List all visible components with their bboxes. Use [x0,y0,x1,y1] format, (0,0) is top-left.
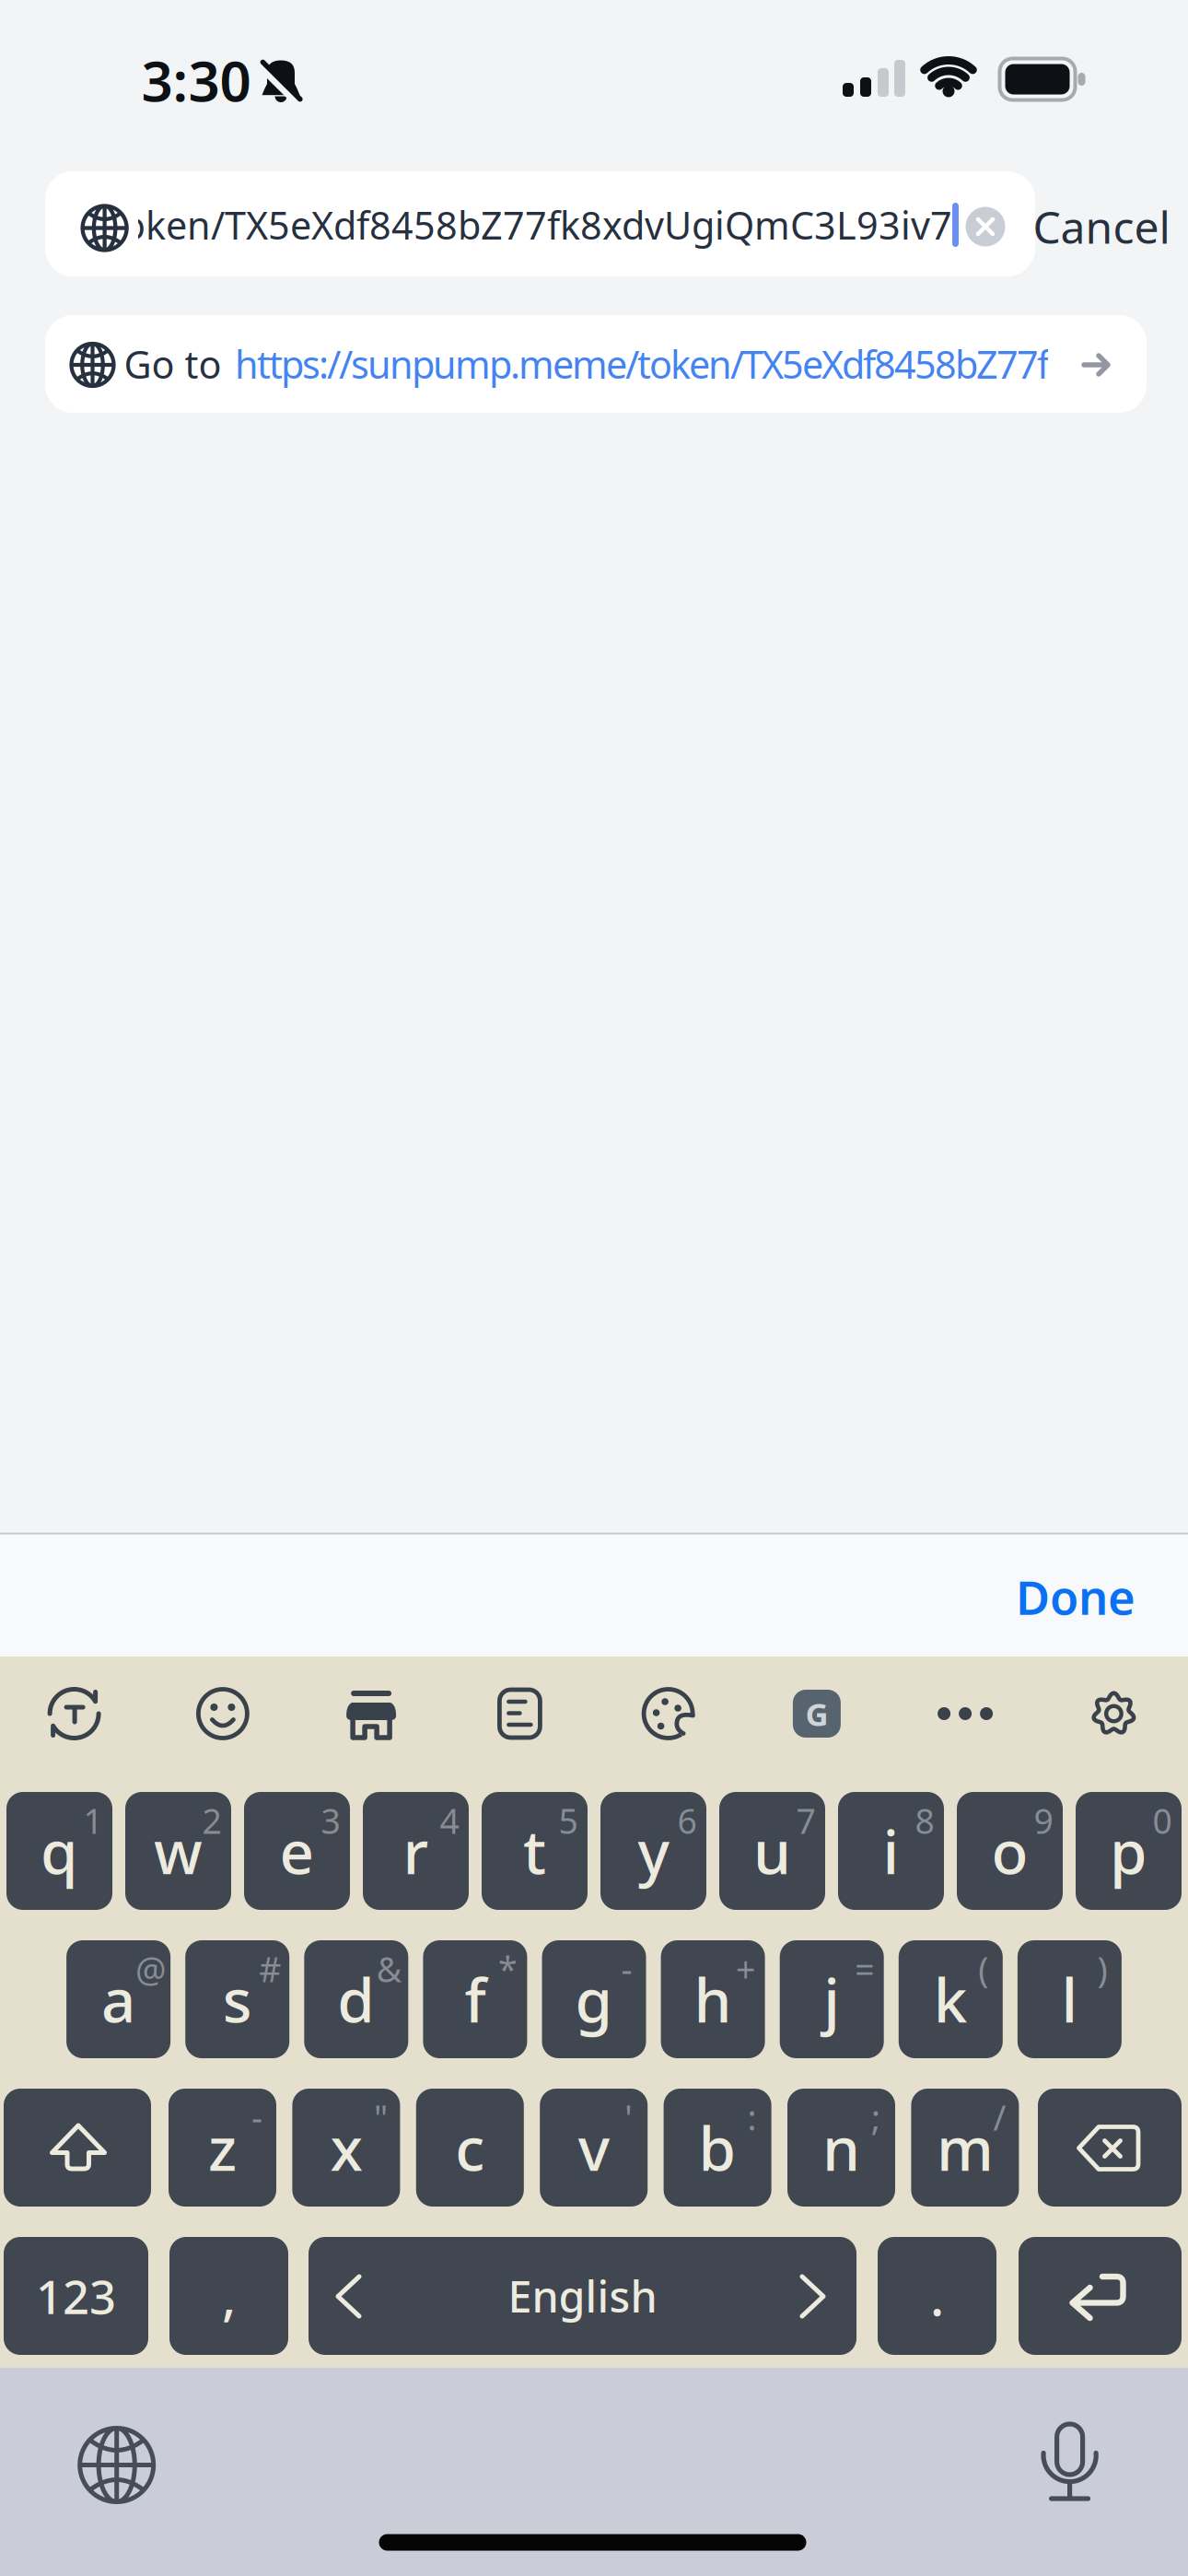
button[interactable] [4,2089,151,2207]
staticText: ; [871,2094,880,2140]
button[interactable]: . [878,2237,996,2355]
button[interactable] [1033,2416,1107,2508]
staticText: 3:30 [141,43,251,117]
staticText: 0 [1153,1798,1172,1843]
button[interactable]: z [169,2089,276,2207]
staticText: : [747,2094,757,2140]
staticText: 5 [559,1798,578,1843]
staticText: 9 [1034,1798,1053,1843]
staticText: n [822,2108,860,2188]
staticText: c [455,2108,485,2188]
staticText: oken/TX5eXdf8458bZ77fk8xdvUgiQmC3L93iv7 [122,200,952,250]
staticText: t [523,1811,546,1891]
staticText: 123 [36,2265,116,2327]
button[interactable] [1019,2237,1182,2355]
staticText: r [403,1811,429,1891]
staticText: - [621,1946,632,1992]
button[interactable]: e [244,1792,350,1910]
button[interactable]: Go to [45,315,1147,413]
button[interactable] [1068,1668,1160,1760]
button[interactable]: a [66,1940,170,2058]
staticText: p [1110,1811,1147,1891]
button[interactable] [1038,2089,1182,2207]
button[interactable]: x [292,2089,400,2207]
button[interactable]: j [780,1940,884,2058]
staticText: b [699,2108,736,2188]
staticText: j [823,1959,840,2039]
staticText: 1 [83,1798,103,1843]
button[interactable]: Cancel [996,181,1188,273]
staticText: g [575,1959,613,2039]
button[interactable]: q [6,1792,112,1910]
button[interactable]: f [423,1940,527,2058]
button[interactable]: t [482,1792,588,1910]
staticText: 2 [202,1798,221,1843]
button[interactable] [28,1668,120,1760]
staticText: @ [135,1946,167,1992]
button[interactable]: r [363,1792,469,1910]
staticText: h [694,1959,732,2039]
staticText: ( [978,1946,988,1992]
staticText: / [993,2094,1006,2140]
staticText: 7 [796,1798,815,1843]
button[interactable]: i [838,1792,944,1910]
button[interactable]: Done [993,1551,1159,1643]
button[interactable] [325,1668,417,1760]
staticText: Go to [124,339,221,389]
button[interactable]: y [600,1792,706,1910]
staticText: 4 [440,1798,459,1843]
staticText: . [930,2262,944,2330]
staticText: https://sunpump.meme/token/TX5eXdf8458bZ… [235,339,1188,389]
button[interactable]: l [1018,1940,1122,2058]
button[interactable]: , [169,2237,288,2355]
staticText: ) [1097,1946,1107,1992]
staticText: e [280,1811,314,1891]
button[interactable]: 123 [4,2237,148,2355]
staticText: u [753,1811,791,1891]
staticText: Done [1016,1566,1136,1628]
staticText: f [465,1959,486,2039]
button[interactable]: English [309,2237,856,2355]
button[interactable]: h [661,1940,765,2058]
button[interactable]: n [787,2089,895,2207]
button[interactable] [177,1668,269,1760]
staticText: s [223,1959,252,2039]
button[interactable]: oken/TX5eXdf8458bZ77fk8xdvUgiQmC3L93iv7 [45,171,1035,276]
button[interactable]: o [957,1792,1063,1910]
button[interactable]: G [771,1668,863,1760]
button[interactable]: w [125,1792,231,1910]
staticText: & [376,1946,401,1992]
button[interactable] [71,2419,163,2511]
staticText: z [208,2108,237,2188]
button[interactable]: m [911,2089,1019,2207]
staticText: ' [625,2094,632,2140]
button[interactable]: b [664,2089,771,2207]
button[interactable]: u [719,1792,825,1910]
staticText: Cancel [1033,197,1170,256]
button[interactable]: d [304,1940,408,2058]
staticText: o [991,1811,1028,1891]
staticText: l [1061,1959,1078,2039]
staticText: q [41,1811,78,1891]
staticText: w [154,1811,203,1891]
staticText: m [936,2108,994,2188]
staticText: - [251,2094,262,2140]
button[interactable] [966,207,1005,246]
button[interactable]: v [540,2089,648,2207]
button[interactable]: c [416,2089,524,2207]
staticText: d [337,1959,375,2039]
button[interactable]: g [542,1940,646,2058]
button[interactable]: k [899,1940,1003,2058]
button[interactable] [474,1668,566,1760]
staticText: v [578,2108,609,2188]
staticText: # [259,1946,281,1992]
staticText: + [736,1946,755,1992]
button[interactable]: p [1076,1792,1182,1910]
button[interactable] [622,1668,714,1760]
staticText: a [101,1959,135,2039]
button[interactable] [919,1668,1011,1760]
staticText: x [330,2108,362,2188]
button[interactable]: s [185,1940,289,2058]
staticText: k [934,1959,968,2039]
staticText: i [883,1811,899,1891]
